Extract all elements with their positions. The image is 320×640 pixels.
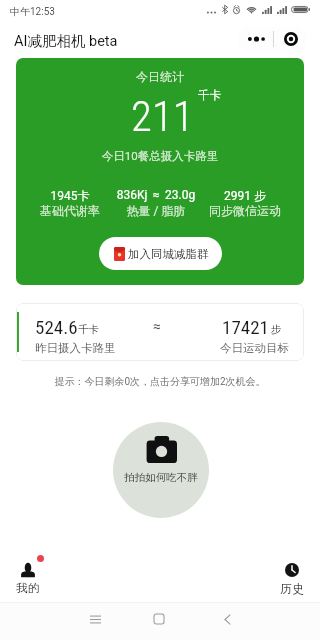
button[interactable]: Close mini program (274, 27, 307, 51)
staticText: 昨日摄入卡路里 (35, 341, 116, 355)
staticText: 拍拍如何吃不胖 (113, 471, 209, 484)
button[interactable]: Back (213, 605, 241, 633)
staticText: 2991 步 (195, 188, 295, 203)
staticText: 836Kj ≈ 23.0g (106, 188, 206, 202)
staticText: 中午12:53 (10, 5, 55, 18)
staticText: 今日运动目标 (220, 341, 289, 355)
button[interactable]: 我的 (8, 556, 56, 596)
button[interactable]: Recent apps (81, 605, 109, 633)
button[interactable]: Take food photo (113, 422, 209, 518)
staticText: 今日10餐总摄入卡路里 (16, 149, 304, 163)
staticText: ≈ (153, 318, 161, 334)
staticText: 加入同城减脂群 (128, 247, 209, 261)
staticText: 17421 (222, 316, 269, 338)
staticText: 524.6 (35, 316, 78, 338)
staticText: 今日统计 (16, 69, 304, 84)
button[interactable]: 524.6 (16, 303, 304, 361)
staticText: 我的 (16, 581, 40, 596)
staticText: 211 (131, 91, 194, 141)
staticText: 步 (271, 323, 282, 336)
staticText: 提示：今日剩余0次，点击分享可增加2次机会。 (0, 375, 320, 388)
staticText: 热量 / 脂肪 (106, 203, 206, 218)
staticText: 1945卡 (20, 188, 120, 203)
staticText: 同步微信运动 (195, 203, 295, 218)
button[interactable]: More options (238, 27, 273, 51)
button[interactable]: 今日统计 (16, 58, 304, 285)
staticText: 千卡 (198, 88, 221, 102)
button[interactable]: Home (145, 605, 173, 633)
staticText: 历史 (268, 581, 316, 596)
staticText: 千卡 (78, 323, 99, 336)
button[interactable]: 历史 (268, 556, 316, 596)
staticText: 基础代谢率 (20, 203, 120, 218)
button[interactable]: 加入同城减脂群 (99, 237, 222, 270)
staticText: AI减肥相机 beta (14, 32, 118, 50)
